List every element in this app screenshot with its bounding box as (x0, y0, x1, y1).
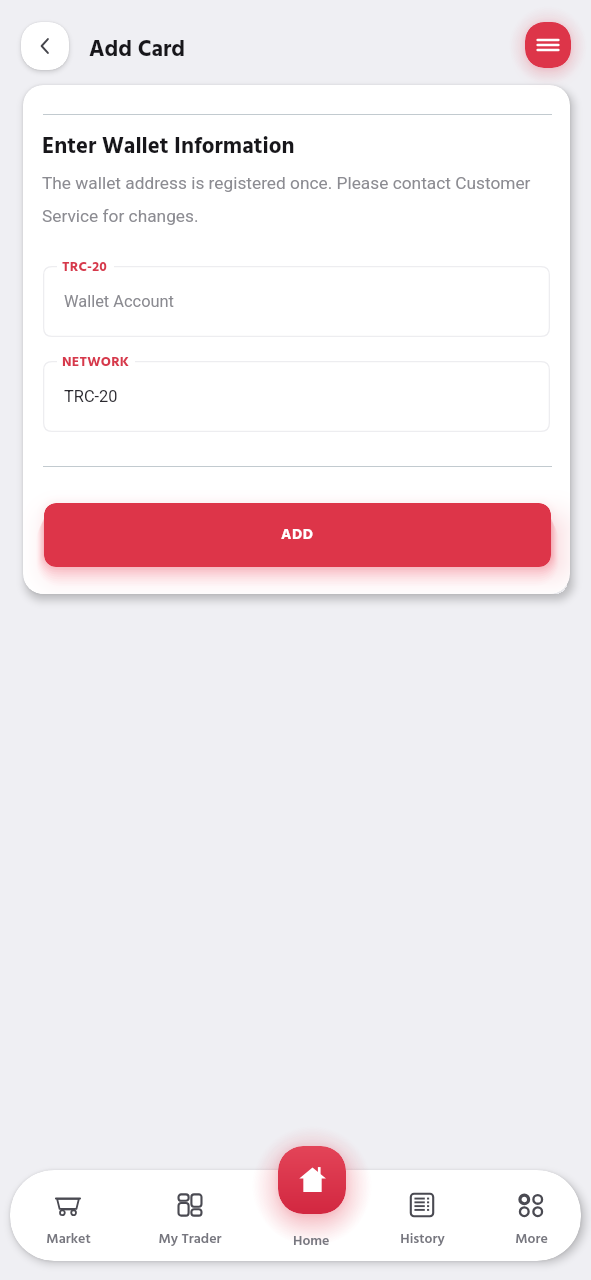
button[interactable]: Market (18, 1175, 118, 1266)
button[interactable]: My Trader (140, 1175, 240, 1266)
button[interactable]: History (372, 1175, 472, 1266)
button[interactable]: Home (278, 1146, 346, 1214)
staticText: History (400, 1228, 445, 1250)
button[interactable]: NETWORK (43, 351, 550, 433)
staticText: More (515, 1228, 548, 1250)
button[interactable]: TRC-20 (43, 256, 550, 338)
staticText: Add Card (89, 32, 186, 68)
staticText: Wallet Account (64, 292, 174, 311)
staticText: ADD (281, 523, 314, 547)
staticText: Home (293, 1230, 330, 1252)
button[interactable]: ADD (44, 503, 551, 567)
staticText: TRC-20 (62, 256, 108, 278)
button[interactable]: Menu (525, 22, 571, 68)
button[interactable]: Back (21, 22, 69, 70)
staticText: My Trader (158, 1228, 222, 1250)
button[interactable]: More (481, 1175, 581, 1266)
staticText: Enter Wallet Information (42, 129, 295, 165)
staticText: The wallet address is registered once. P… (42, 173, 537, 226)
staticText: TRC-20 (64, 387, 118, 406)
staticText: Market (46, 1228, 91, 1250)
staticText: NETWORK (62, 351, 130, 373)
